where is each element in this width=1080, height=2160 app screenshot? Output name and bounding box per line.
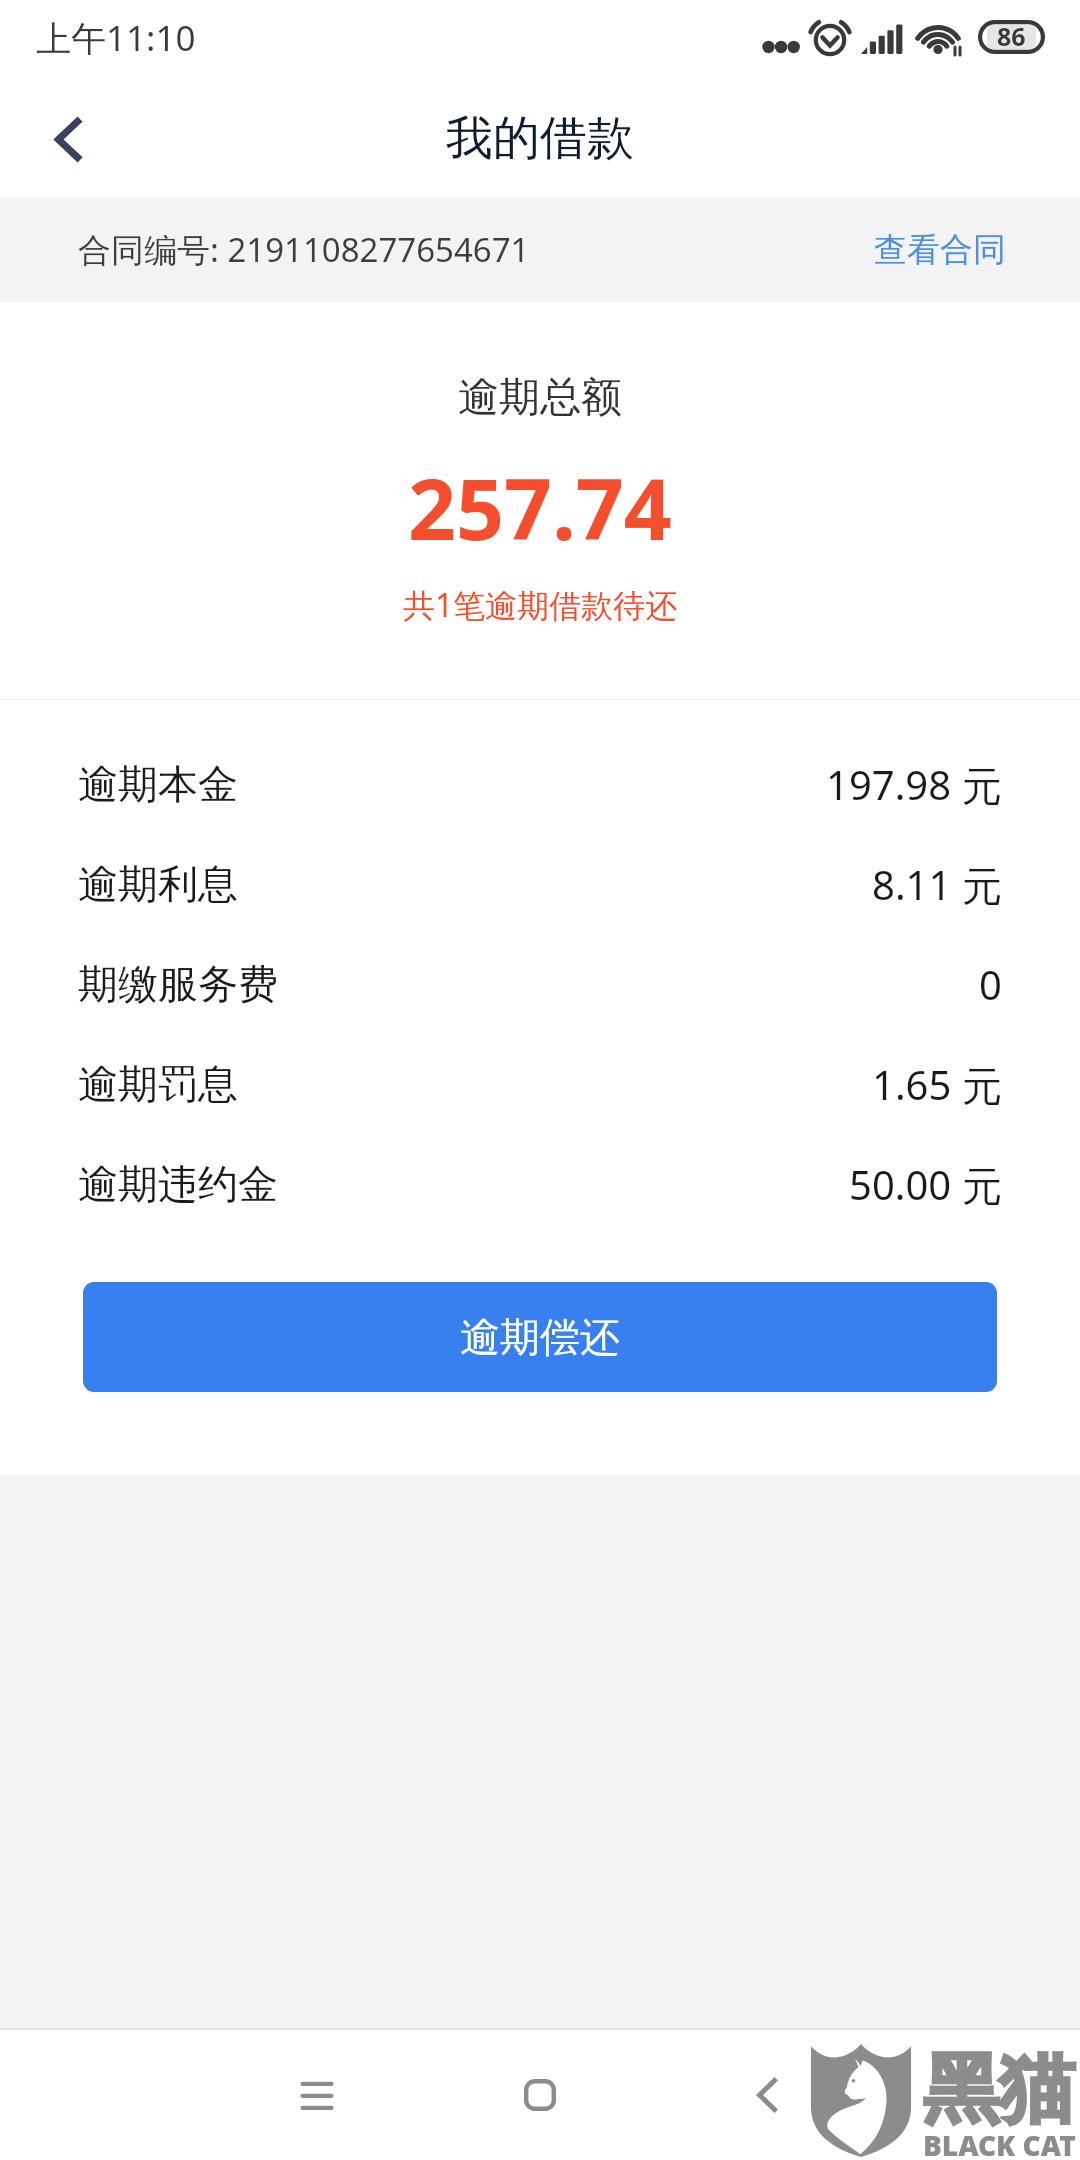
staticText: 逾期违约金 <box>78 1159 278 1209</box>
staticText: 8.11 元 <box>872 857 1002 912</box>
staticText: 查看合同 <box>874 229 1006 271</box>
staticText: 黑猫 <box>923 2042 1075 2138</box>
button[interactable]: Back <box>707 2035 827 2155</box>
staticText: BLACK CAT <box>923 2126 1076 2160</box>
staticText: 我的借款 <box>446 109 634 168</box>
staticText: 197.98 元 <box>826 757 1002 812</box>
staticText: 逾期罚息 <box>78 1059 238 1109</box>
button[interactable]: Menu <box>257 2035 377 2155</box>
staticText: 逾期本金 <box>78 759 238 809</box>
staticText: 逾期总额 <box>458 372 622 424</box>
staticText: 1.65 元 <box>872 1057 1002 1112</box>
staticText: 逾期利息 <box>78 859 238 909</box>
staticText: 257.74 <box>408 450 672 564</box>
button[interactable]: 查看合同 <box>800 207 1080 293</box>
staticText: 上午11:10 <box>36 14 196 62</box>
staticText: 期缴服务费 <box>78 959 278 1009</box>
button[interactable]: Back <box>15 87 120 192</box>
button[interactable]: 逾期偿还 <box>83 1282 997 1392</box>
staticText: 86 <box>997 19 1026 53</box>
button[interactable]: Home <box>480 2035 600 2155</box>
staticText: 共1笔逾期借款待还 <box>403 583 678 627</box>
staticText: 合同编号: 2191108277654671 <box>78 227 530 272</box>
staticText: 50.00 元 <box>849 1157 1002 1212</box>
staticText: 0 <box>979 957 1002 1011</box>
staticText: 逾期偿还 <box>460 1312 620 1362</box>
